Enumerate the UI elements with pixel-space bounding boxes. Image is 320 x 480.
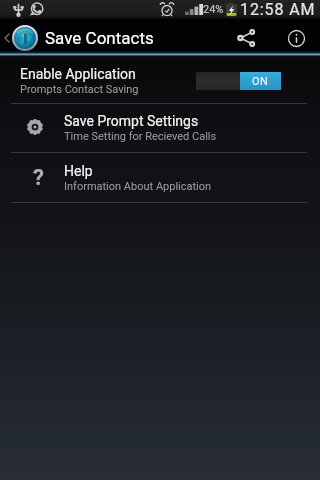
staticText: 12:58 AM [240, 0, 316, 19]
staticText: Save Contacts [45, 28, 154, 48]
staticText: Prompts Contact Saving [20, 83, 139, 96]
staticText: Time Setting for Recieved Calls [64, 130, 217, 143]
button[interactable]: Enable Application [0, 58, 320, 103]
staticText: Help [64, 163, 93, 179]
staticText: Save Prompt Settings [64, 113, 199, 129]
button[interactable]: ? [0, 153, 320, 202]
staticText: ? [33, 165, 44, 191]
staticText: ON [252, 75, 269, 88]
button[interactable]: Information [272, 19, 320, 57]
button[interactable]: Navigate up [0, 19, 40, 57]
staticText: Enable Application [20, 66, 136, 82]
staticText: Information About Application [64, 180, 212, 193]
staticText: 24% [203, 3, 224, 16]
button[interactable]: Share [220, 19, 272, 57]
button[interactable]: Save Prompt Settings [0, 104, 320, 152]
